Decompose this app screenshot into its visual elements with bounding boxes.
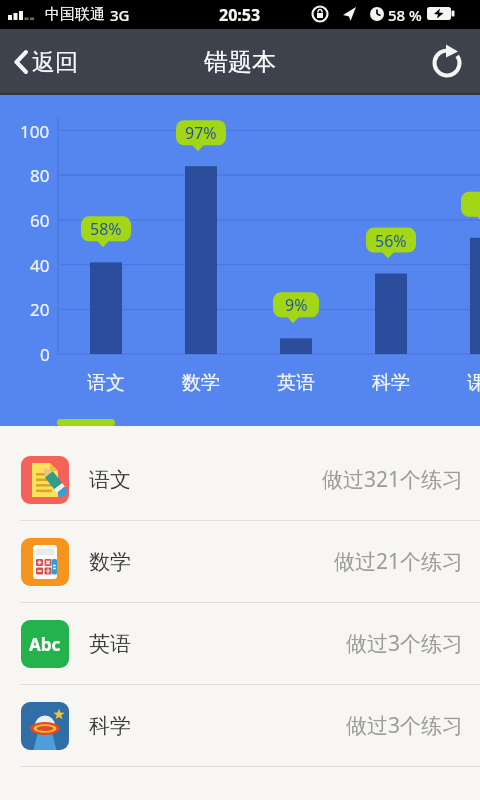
button[interactable]: 语文 — [0, 439, 480, 521]
staticText: 返回 — [32, 48, 78, 77]
staticText: 3G — [110, 5, 130, 25]
button[interactable]: 返回 — [8, 29, 84, 95]
button[interactable]: 科学 — [351, 371, 431, 395]
staticText: 60 — [30, 209, 50, 231]
staticText: 80 — [30, 164, 50, 186]
staticText: 中国联通 — [45, 5, 105, 24]
staticText: 100 — [20, 120, 50, 142]
staticText: 语文 — [87, 371, 125, 395]
staticText: 20 — [30, 298, 50, 320]
staticText: 56% — [375, 230, 407, 252]
staticText: 做过3个练习 — [346, 711, 464, 740]
staticText: 错题本 — [204, 47, 276, 77]
staticText: 科学 — [372, 371, 410, 395]
staticText: 数学 — [182, 371, 220, 395]
staticText: 40 — [30, 254, 50, 276]
staticText: 20:53 — [219, 4, 261, 26]
button[interactable]: 科学 — [0, 685, 480, 767]
button[interactable]: 语文 — [66, 371, 146, 395]
staticText: 数学 — [89, 549, 131, 575]
staticText: 科学 — [89, 713, 131, 739]
staticText: 做过321个练习 — [322, 465, 464, 494]
staticText: 英语 — [89, 631, 131, 657]
staticText: 英语 — [277, 371, 315, 395]
staticText: 课外 — [467, 371, 480, 395]
button[interactable]: 英语 — [256, 371, 336, 395]
button[interactable]: 数学 — [0, 521, 480, 603]
staticText: Abc — [29, 633, 61, 656]
staticText: 做过21个练习 — [334, 547, 464, 576]
button[interactable] — [428, 42, 468, 82]
staticText: 58% — [90, 218, 122, 240]
staticText: 97% — [185, 122, 217, 144]
button[interactable]: Abc — [0, 603, 480, 685]
staticText: 做过3个练习 — [346, 629, 464, 658]
button[interactable]: 数学 — [161, 371, 241, 395]
staticText: 0 — [40, 343, 50, 365]
staticText: 58 % — [388, 5, 422, 25]
button[interactable]: 课外 — [446, 371, 480, 395]
staticText: 9% — [285, 294, 308, 316]
staticText: 语文 — [89, 467, 131, 493]
